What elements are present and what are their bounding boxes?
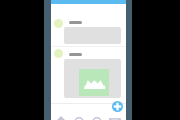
button[interactable]: Home: [52, 105, 70, 120]
button[interactable]: Mail: [106, 105, 124, 120]
button[interactable]: [53, 46, 125, 98]
button[interactable]: Add: [112, 101, 123, 112]
button[interactable]: Search: [70, 105, 88, 120]
button[interactable]: Favorites: [88, 105, 106, 120]
button[interactable]: [53, 15, 125, 46]
